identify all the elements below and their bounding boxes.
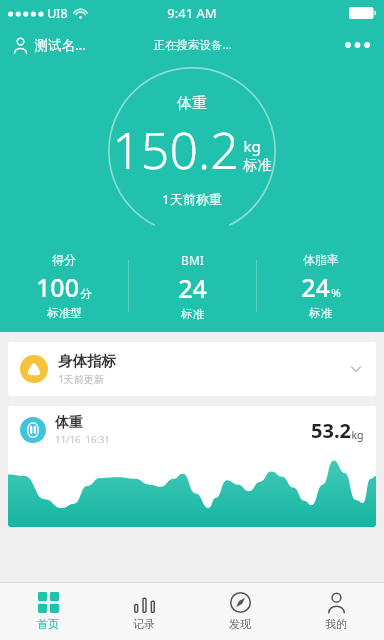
staticText: 测试名… <box>34 36 86 54</box>
staticText: 体脂率 <box>303 252 339 267</box>
staticText: 身体指标 <box>58 352 116 370</box>
staticText: 标准型 <box>47 306 82 320</box>
button[interactable]: 测试名… <box>0 31 96 59</box>
button[interactable]: 首页 <box>0 583 96 640</box>
button[interactable]: 发现 <box>192 583 288 640</box>
other: Expand <box>348 361 364 377</box>
staticText: 1天前称重 <box>162 190 222 208</box>
staticText: BMI <box>181 252 204 268</box>
staticText: 体重 <box>55 414 83 432</box>
staticText: 标准 <box>243 156 272 174</box>
button[interactable]: 得分 <box>0 252 128 320</box>
staticText: 100 <box>36 270 79 304</box>
staticText: 分 <box>80 287 92 301</box>
button[interactable]: BMI <box>129 252 256 321</box>
button[interactable]: 体脂率 <box>257 252 384 320</box>
button[interactable]: 我的 <box>288 583 384 640</box>
staticText: UI8 <box>47 5 68 22</box>
staticText: 发现 <box>229 617 251 631</box>
staticText: 150.2 <box>112 116 239 184</box>
staticText: 首页 <box>37 617 59 631</box>
staticText: 11/16 16:31 <box>55 433 110 446</box>
staticText: 1天前更新 <box>58 372 104 386</box>
button[interactable]: More options <box>331 31 384 59</box>
staticText: 24 <box>301 270 330 304</box>
staticText: 53.2 <box>311 417 351 444</box>
staticText: 正在搜索设备… <box>153 37 232 53</box>
staticText: 记录 <box>133 617 155 631</box>
staticText: 标准 <box>181 307 204 321</box>
staticText: kg <box>243 136 261 156</box>
staticText: 体重 <box>177 94 207 113</box>
staticText: 9:41 AM <box>167 4 217 22</box>
staticText: 标准 <box>309 306 332 320</box>
staticText: kg <box>351 428 364 442</box>
staticText: 我的 <box>325 617 347 631</box>
staticText: 24 <box>178 271 207 305</box>
staticText: % <box>331 285 341 301</box>
button[interactable]: 体重 <box>8 406 376 527</box>
button[interactable]: 记录 <box>96 583 192 640</box>
staticText: 得分 <box>52 252 76 267</box>
button[interactable]: 身体指标 <box>8 342 376 396</box>
